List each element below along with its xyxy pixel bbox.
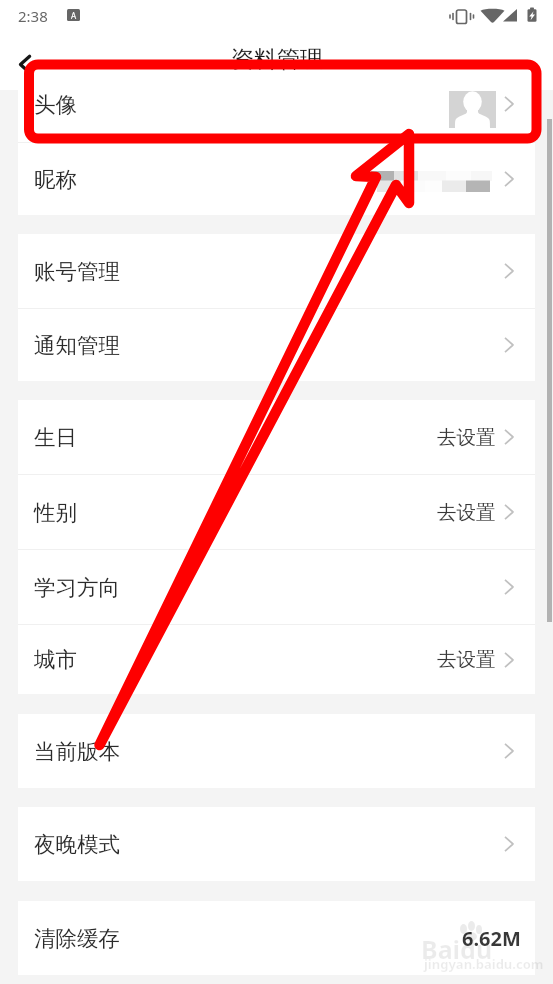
staticText: 去设置 [437, 647, 496, 672]
staticText: 清除缓存 [34, 925, 120, 952]
button[interactable]: 当前版本 [18, 714, 535, 788]
button[interactable]: 头像 [18, 90, 535, 141]
staticText: 性别 [34, 499, 77, 526]
staticText: 生日 [34, 424, 77, 451]
staticText: 夜晚模式 [34, 831, 120, 858]
button[interactable]: Back [1, 40, 49, 88]
button[interactable]: 城市 [18, 625, 535, 694]
staticText: 6.62M [462, 925, 521, 952]
staticText: Baidu [421, 932, 493, 966]
staticText: 资料管理 [231, 45, 323, 74]
staticText: 头像 [34, 91, 77, 118]
staticText: 2:38 [18, 6, 48, 26]
staticText: 账号管理 [34, 258, 120, 285]
button[interactable]: 学习方向 [18, 550, 535, 624]
staticText: 去设置 [437, 425, 496, 450]
staticText: 去设置 [437, 500, 496, 525]
staticText: A [71, 10, 77, 21]
button[interactable]: 生日 [18, 400, 535, 474]
button[interactable]: 通知管理 [18, 309, 535, 381]
staticText: 当前版本 [34, 738, 120, 765]
staticText: 学习方向 [34, 574, 120, 601]
button[interactable]: 昵称 [18, 143, 535, 215]
staticText: 通知管理 [34, 332, 120, 359]
staticText: jingyan.baidu.com [424, 955, 544, 973]
staticText: 城市 [34, 646, 77, 673]
button[interactable]: 性别 [18, 475, 535, 549]
button[interactable]: 夜晚模式 [18, 807, 535, 881]
button[interactable]: 清除缓存 [18, 901, 535, 975]
button[interactable]: 账号管理 [18, 234, 535, 308]
staticText: 昵称 [34, 166, 77, 193]
